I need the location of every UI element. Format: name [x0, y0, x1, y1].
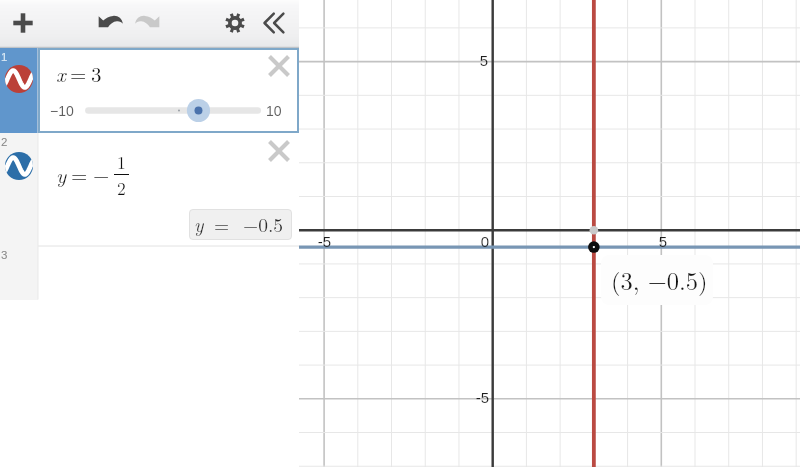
button[interactable]: y [189, 209, 292, 240]
staticText: 3 [91, 58, 102, 88]
staticText: (3, −0.5) [611, 262, 708, 297]
button[interactable]: Undo [96, 7, 124, 35]
staticText: −0.5 [243, 210, 284, 238]
button[interactable]: 2 [0, 133, 38, 246]
button[interactable]: Delete expression [266, 138, 292, 164]
button[interactable]: 1 [0, 48, 38, 133]
staticText: = [70, 58, 87, 88]
staticText: 5 [428, 52, 488, 69]
staticText: 2 [1, 136, 8, 149]
button[interactable]: Delete expression [266, 53, 292, 79]
staticText: 1 [117, 149, 126, 174]
staticText: = [214, 210, 230, 238]
button[interactable]: x [38, 48, 299, 133]
staticText: 3 [1, 249, 8, 262]
staticText: y [56, 159, 67, 189]
staticText: -5 [429, 389, 489, 406]
staticText: 5 [607, 233, 667, 250]
staticText: −10 [50, 103, 74, 119]
staticText: y [194, 210, 204, 238]
staticText: 0 [429, 233, 489, 250]
staticText: 2 [117, 175, 126, 200]
button[interactable]: Collapse panel [258, 8, 288, 38]
staticText: -5 [271, 233, 331, 250]
button[interactable]: Add expression [9, 9, 37, 37]
button[interactable]: y [38, 133, 299, 246]
staticText: 1 [1, 51, 8, 64]
staticText: = [71, 159, 88, 189]
staticText: 10 [266, 103, 282, 119]
button[interactable]: Redo [134, 7, 162, 35]
staticText: − [93, 159, 110, 189]
staticText: x [56, 58, 66, 88]
button[interactable]: Settings [221, 9, 249, 37]
button[interactable]: 3 [0, 246, 38, 300]
